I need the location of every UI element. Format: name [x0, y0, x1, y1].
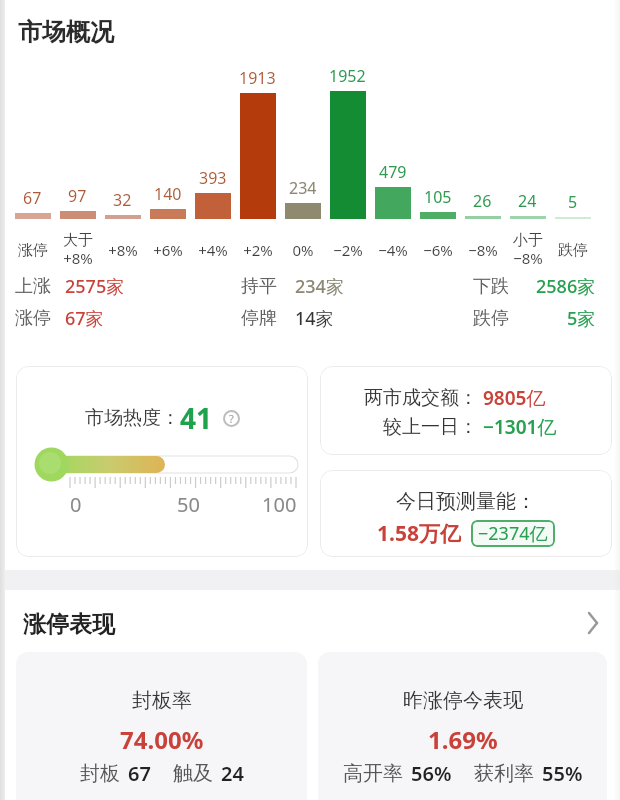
staticText: 479 — [379, 161, 407, 183]
staticText: 41 — [180, 399, 213, 437]
staticText: −4% — [378, 240, 408, 260]
staticText: 今日预测量能： — [396, 489, 536, 514]
staticText: 105 — [424, 186, 452, 208]
staticText: +4% — [198, 240, 228, 260]
staticText: 2586家 — [536, 274, 596, 299]
staticText: −1301亿 — [483, 414, 557, 440]
staticText: 2575家 — [65, 274, 125, 299]
staticText: 32 — [113, 189, 132, 211]
staticText: 67 — [23, 187, 42, 209]
staticText: +2% — [243, 240, 273, 260]
staticText: 55% — [542, 760, 583, 786]
staticText: 获利率 — [474, 761, 534, 786]
staticText: +8% — [108, 240, 138, 260]
staticText: 下跌 — [473, 275, 509, 298]
staticText: 小于 −8% — [513, 231, 543, 269]
staticText: 97 — [68, 185, 87, 207]
staticText: 大于 +8% — [63, 231, 93, 269]
staticText: 持平 — [241, 275, 277, 298]
staticText: 停牌 — [241, 307, 277, 330]
staticText: 高开率 — [343, 761, 403, 786]
staticText: 5家 — [567, 306, 596, 331]
staticText: 9805亿 — [483, 385, 546, 411]
staticText: ? — [229, 411, 234, 426]
staticText: 140 — [154, 183, 182, 205]
staticText: 1952 — [329, 65, 366, 87]
staticText: −2% — [333, 240, 363, 260]
staticText: 跌停 — [473, 307, 509, 330]
staticText: 24 — [221, 760, 244, 786]
staticText: 1913 — [239, 67, 276, 89]
staticText: +6% — [153, 240, 183, 260]
staticText: 56% — [411, 760, 452, 786]
staticText: 市场热度： — [85, 406, 180, 430]
staticText: 74.00% — [120, 723, 204, 751]
staticText: 封板率 — [132, 688, 192, 713]
staticText: 涨停 — [15, 307, 51, 330]
button[interactable]: 昨涨停今表现 — [318, 652, 607, 800]
button[interactable] — [578, 608, 608, 638]
staticText: 触及 — [173, 761, 213, 786]
staticText: 昨涨停今表现 — [403, 688, 523, 713]
staticText: 50 — [177, 491, 200, 515]
staticText: 26 — [473, 190, 492, 212]
staticText: 较上一日： — [383, 415, 478, 439]
button[interactable]: 今日预测量能： — [320, 470, 612, 557]
staticText: 234家 — [295, 274, 344, 299]
staticText: 跌停 — [558, 241, 588, 260]
staticText: 两市成交额： — [364, 386, 478, 410]
staticText: 67家 — [65, 306, 104, 331]
staticText: 67 — [128, 760, 151, 786]
staticText: 涨停表现 — [23, 610, 115, 639]
staticText: 封板 — [80, 761, 120, 786]
staticText: 涨停 — [18, 241, 48, 260]
staticText: 1.58万亿 — [377, 519, 461, 547]
staticText: −6% — [423, 240, 453, 260]
staticText: 1.69% — [428, 723, 498, 751]
staticText: −8% — [468, 240, 498, 260]
staticText: 上涨 — [15, 275, 51, 298]
staticText: 0% — [292, 240, 314, 260]
button[interactable]: 两市成交额： — [320, 366, 612, 455]
button[interactable]: 市场热度： — [16, 366, 308, 557]
button[interactable]: 封板率 — [16, 652, 307, 800]
staticText: 5 — [568, 191, 578, 213]
staticText: 100 — [262, 491, 297, 515]
staticText: 234 — [289, 177, 317, 199]
staticText: 393 — [199, 167, 227, 189]
staticText: 0 — [70, 491, 82, 515]
staticText: 24 — [518, 190, 537, 212]
staticText: 14家 — [295, 306, 334, 331]
staticText: −2374亿 — [478, 521, 548, 546]
staticText: 市场概况 — [18, 17, 114, 47]
